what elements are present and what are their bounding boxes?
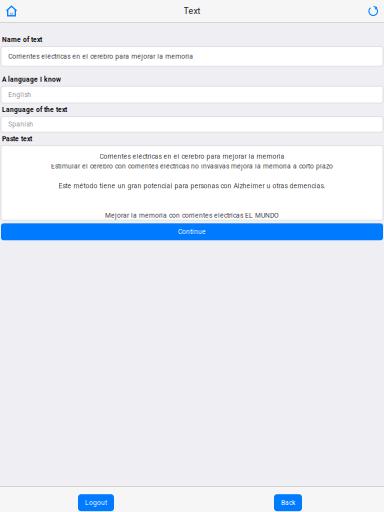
staticText: Estimular el cerebro con corrientes eléc… — [51, 162, 333, 170]
staticText: A language I know — [2, 76, 61, 83]
button[interactable]: Back — [274, 494, 302, 511]
staticText: Text — [183, 6, 200, 16]
staticText: Paste text — [2, 135, 32, 143]
staticText: Este método tiene un gran potencial para… — [58, 182, 325, 190]
staticText: Logout — [85, 499, 107, 507]
button[interactable]: Continue — [1, 223, 383, 240]
staticText: English — [8, 91, 31, 98]
staticText: Continue — [178, 228, 206, 236]
staticText: Back — [281, 499, 295, 507]
staticText: Name of text — [2, 36, 42, 44]
staticText: Mejorar la memoria con corrientes eléctr… — [105, 212, 279, 219]
staticText: Spanish — [8, 120, 33, 128]
button[interactable]: Logout — [78, 494, 114, 511]
staticText: Corrientes eléctricas en el cerebro para… — [8, 52, 193, 60]
staticText: Language of the text — [2, 106, 67, 114]
button[interactable]: Home — [0, 0, 22, 22]
staticText: Corrientes eléctricas en el cerebro para… — [99, 152, 284, 160]
button[interactable]: Reload — [363, 0, 384, 22]
